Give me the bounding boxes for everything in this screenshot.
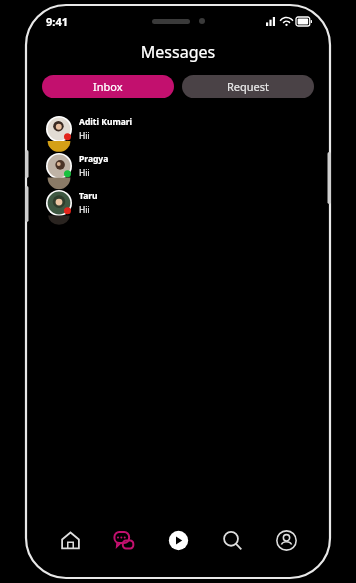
staticText: Hii (79, 167, 90, 179)
staticText: Request (227, 79, 270, 94)
staticText: 9:41 (46, 14, 68, 29)
button[interactable]: Home (48, 518, 92, 562)
button[interactable]: Request (182, 75, 314, 98)
staticText: Aditi Kumari (79, 116, 133, 128)
button[interactable]: Messages (102, 518, 146, 562)
staticText: Messages (28, 41, 328, 63)
staticText: Taru (79, 190, 98, 202)
button[interactable]: Inbox (42, 75, 174, 98)
button[interactable]: Aditi Kumari (28, 110, 328, 147)
button[interactable]: Play (156, 518, 200, 562)
staticText: Hii (79, 130, 90, 142)
button[interactable]: Taru (28, 184, 328, 221)
staticText: Inbox (93, 79, 123, 94)
button[interactable]: Profile (264, 518, 308, 562)
button[interactable]: Search (210, 518, 254, 562)
staticText: Pragya (79, 153, 109, 165)
staticText: Hii (79, 204, 90, 216)
button[interactable]: Pragya (28, 147, 328, 184)
